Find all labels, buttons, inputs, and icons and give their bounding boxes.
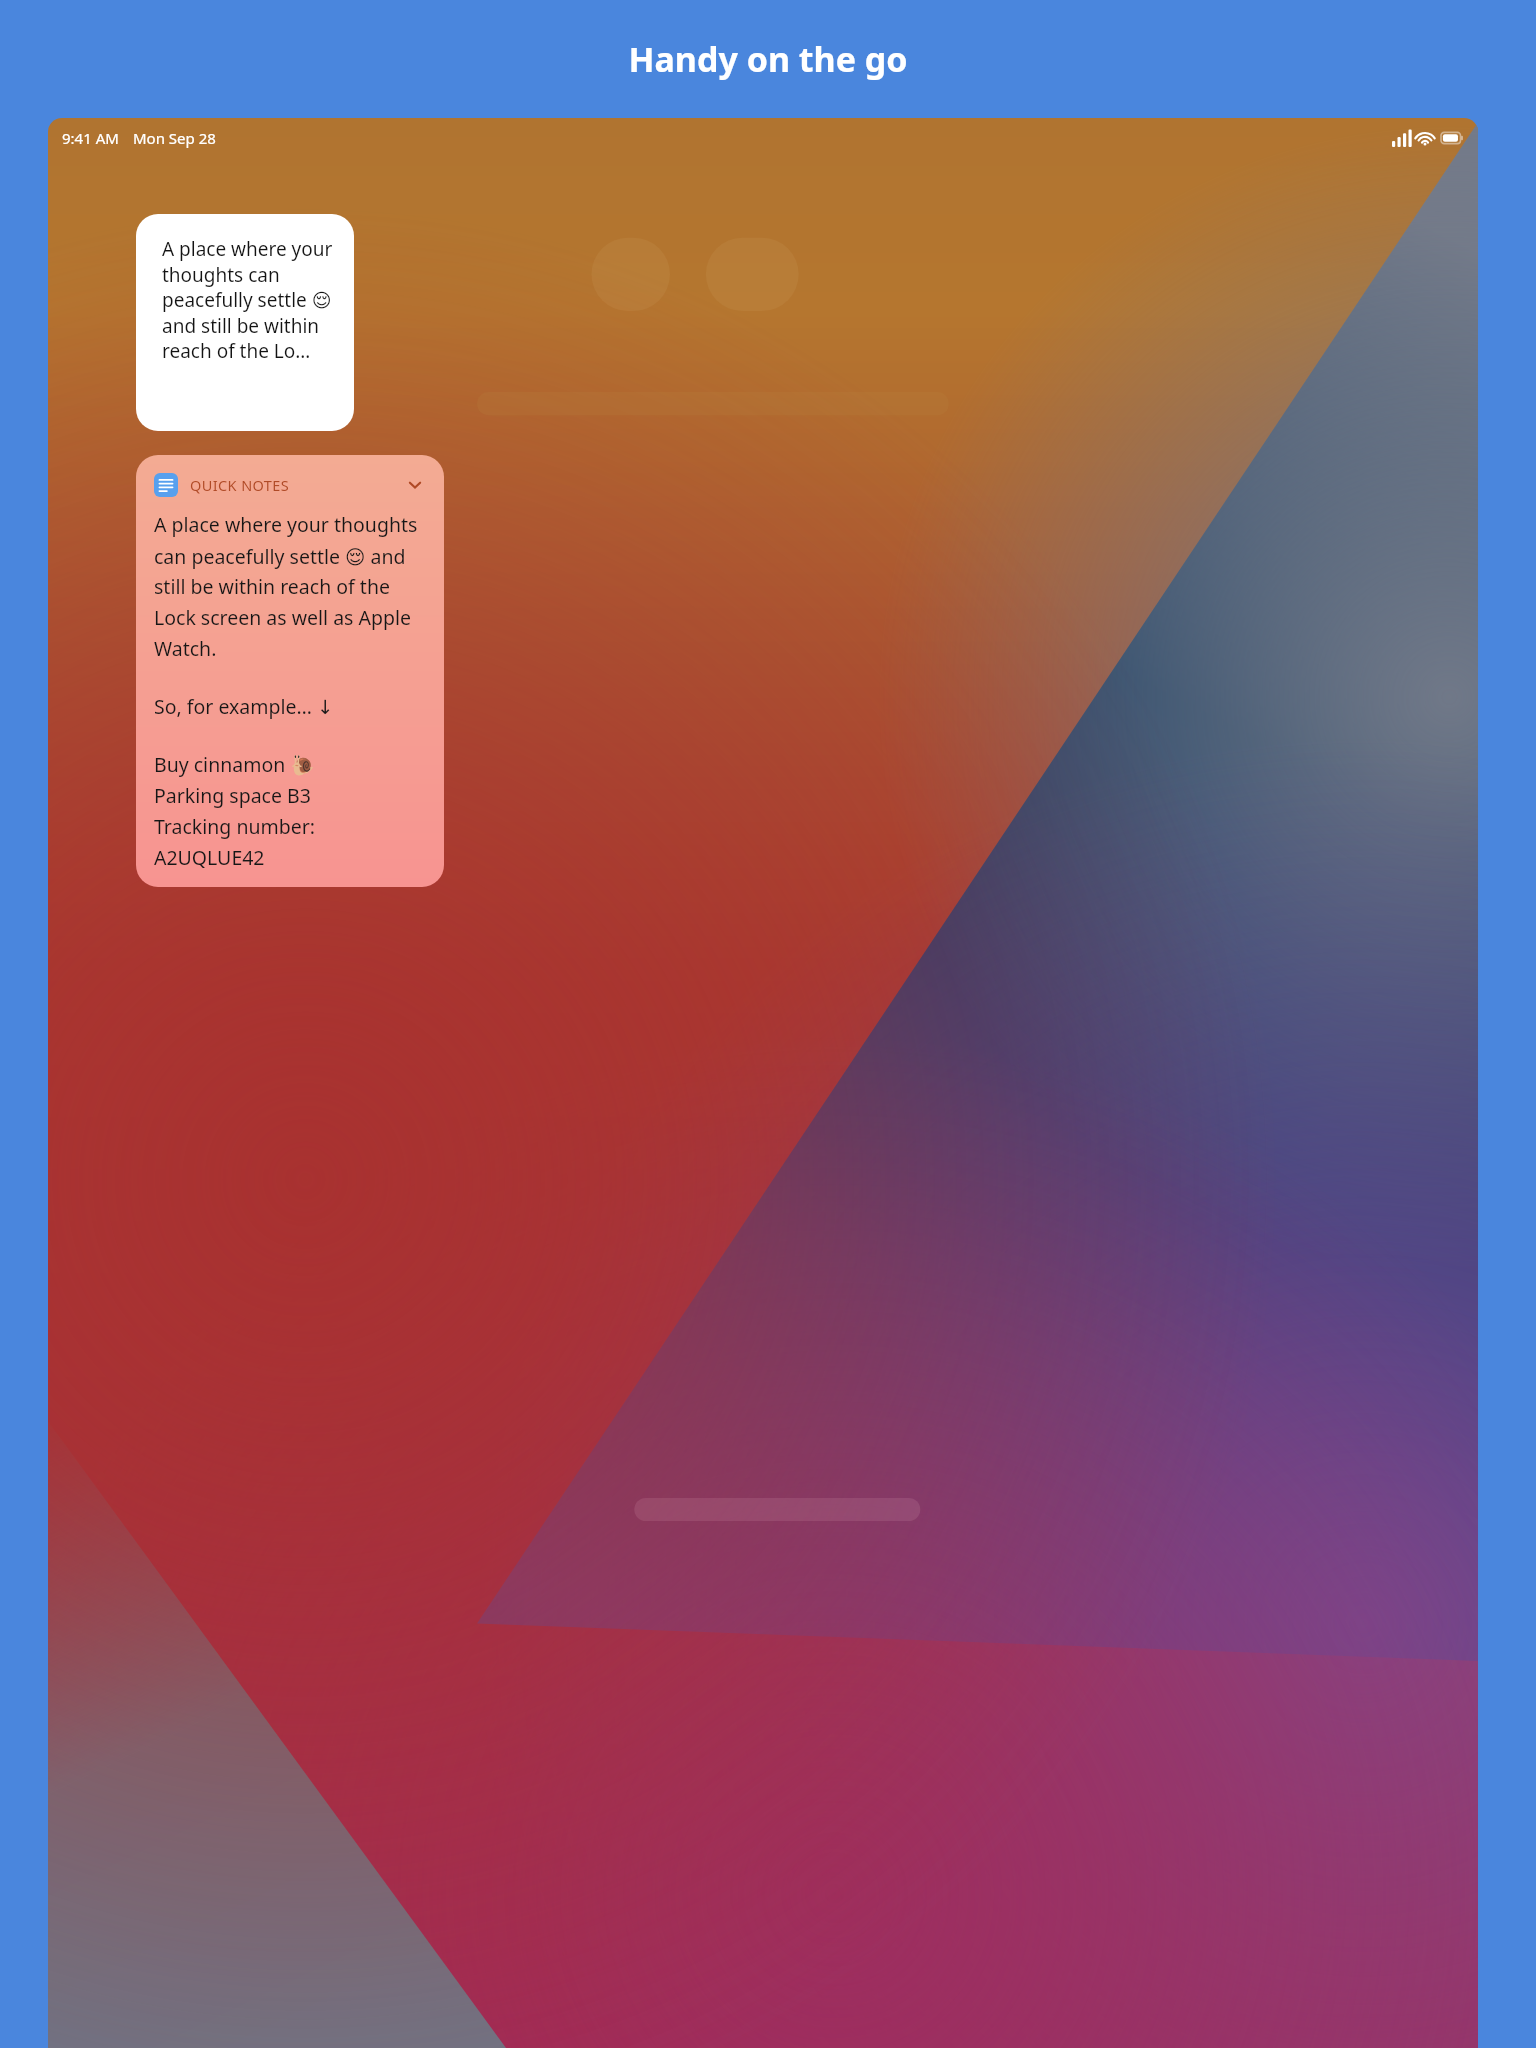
staticText: QUICK NOTES	[190, 475, 290, 495]
staticText: Buy cinnamon 🐌 Parking space B3 Tracking…	[154, 751, 426, 871]
staticText: A place where your thoughts can peaceful…	[154, 511, 426, 662]
staticText: So, for example… ↓	[154, 693, 334, 720]
button[interactable]: A place where your thoughts can peaceful…	[136, 214, 354, 431]
staticText: 9:41 AM	[62, 128, 119, 148]
staticText: Mon Sep 28	[133, 128, 216, 148]
button[interactable]: Expand notification	[404, 474, 426, 496]
staticText: A place where your thoughts can peaceful…	[162, 236, 344, 364]
staticText: Handy on the go	[628, 36, 908, 82]
button[interactable]: QUICK NOTES	[136, 455, 444, 887]
